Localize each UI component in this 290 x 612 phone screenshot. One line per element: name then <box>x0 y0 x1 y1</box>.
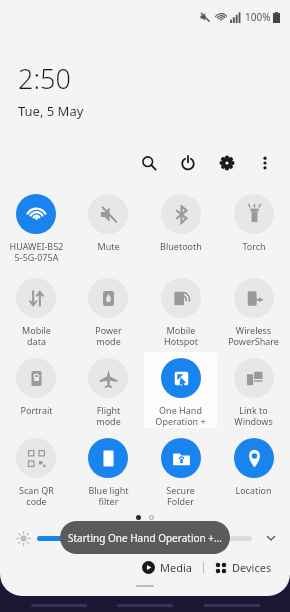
staticText: HUAWEI-B52 5-5G-075A <box>9 240 64 263</box>
staticText: Bluetooth <box>160 240 202 252</box>
button[interactable]: Secure Folder <box>144 430 217 510</box>
button[interactable]: More options <box>252 150 278 176</box>
staticText: Tue, 5 May <box>18 102 84 120</box>
staticText: Secure Folder <box>166 484 195 507</box>
staticText: Flight mode <box>96 404 121 427</box>
staticText: Power mode <box>95 324 122 347</box>
staticText: Mobile Hotspot <box>164 324 198 347</box>
button[interactable]: One Hand Operation + <box>144 350 217 430</box>
staticText: Portrait <box>20 404 53 416</box>
button[interactable]: Devices <box>213 560 274 575</box>
staticText: Media <box>160 560 192 575</box>
button[interactable]: Expand <box>260 527 282 549</box>
staticText: Scan QR code <box>19 484 54 507</box>
staticText: Mobile data <box>22 324 51 347</box>
button[interactable]: Mobile data <box>0 270 72 350</box>
button[interactable]: Search <box>136 150 162 176</box>
button[interactable]: HUAWEI-B52 5-5G-075A <box>0 186 72 270</box>
staticText: Wireless PowerShare <box>228 324 279 347</box>
button[interactable]: Wireless PowerShare <box>217 270 290 350</box>
button[interactable]: Location <box>217 430 290 510</box>
button[interactable]: Bluetooth <box>144 186 217 270</box>
staticText: Link to Windows <box>234 404 273 427</box>
staticText: Devices <box>232 560 272 575</box>
button[interactable]: Mute <box>72 186 144 270</box>
button[interactable]: Media <box>140 560 194 575</box>
staticText: 2:50 <box>18 60 71 97</box>
button[interactable]: Link to Windows <box>217 350 290 430</box>
staticText: Blue light filter <box>88 484 129 507</box>
staticText: One Hand Operation + <box>155 404 206 427</box>
staticText: 100% <box>245 10 271 24</box>
button[interactable]: Power <box>175 150 201 176</box>
button[interactable]: Blue light filter <box>72 430 144 510</box>
staticText: Starting One Hand Operation +… <box>68 531 222 545</box>
button[interactable]: Mobile Hotspot <box>144 270 217 350</box>
staticText: Location <box>235 484 272 496</box>
staticText: Torch <box>242 240 266 252</box>
button[interactable]: Portrait <box>0 350 72 430</box>
button[interactable]: Scan QR code <box>0 430 72 510</box>
staticText: Mute <box>97 240 120 252</box>
button[interactable]: Settings <box>214 150 240 176</box>
button[interactable]: Power mode <box>72 270 144 350</box>
button[interactable]: Flight mode <box>72 350 144 430</box>
button[interactable]: Torch <box>217 186 290 270</box>
